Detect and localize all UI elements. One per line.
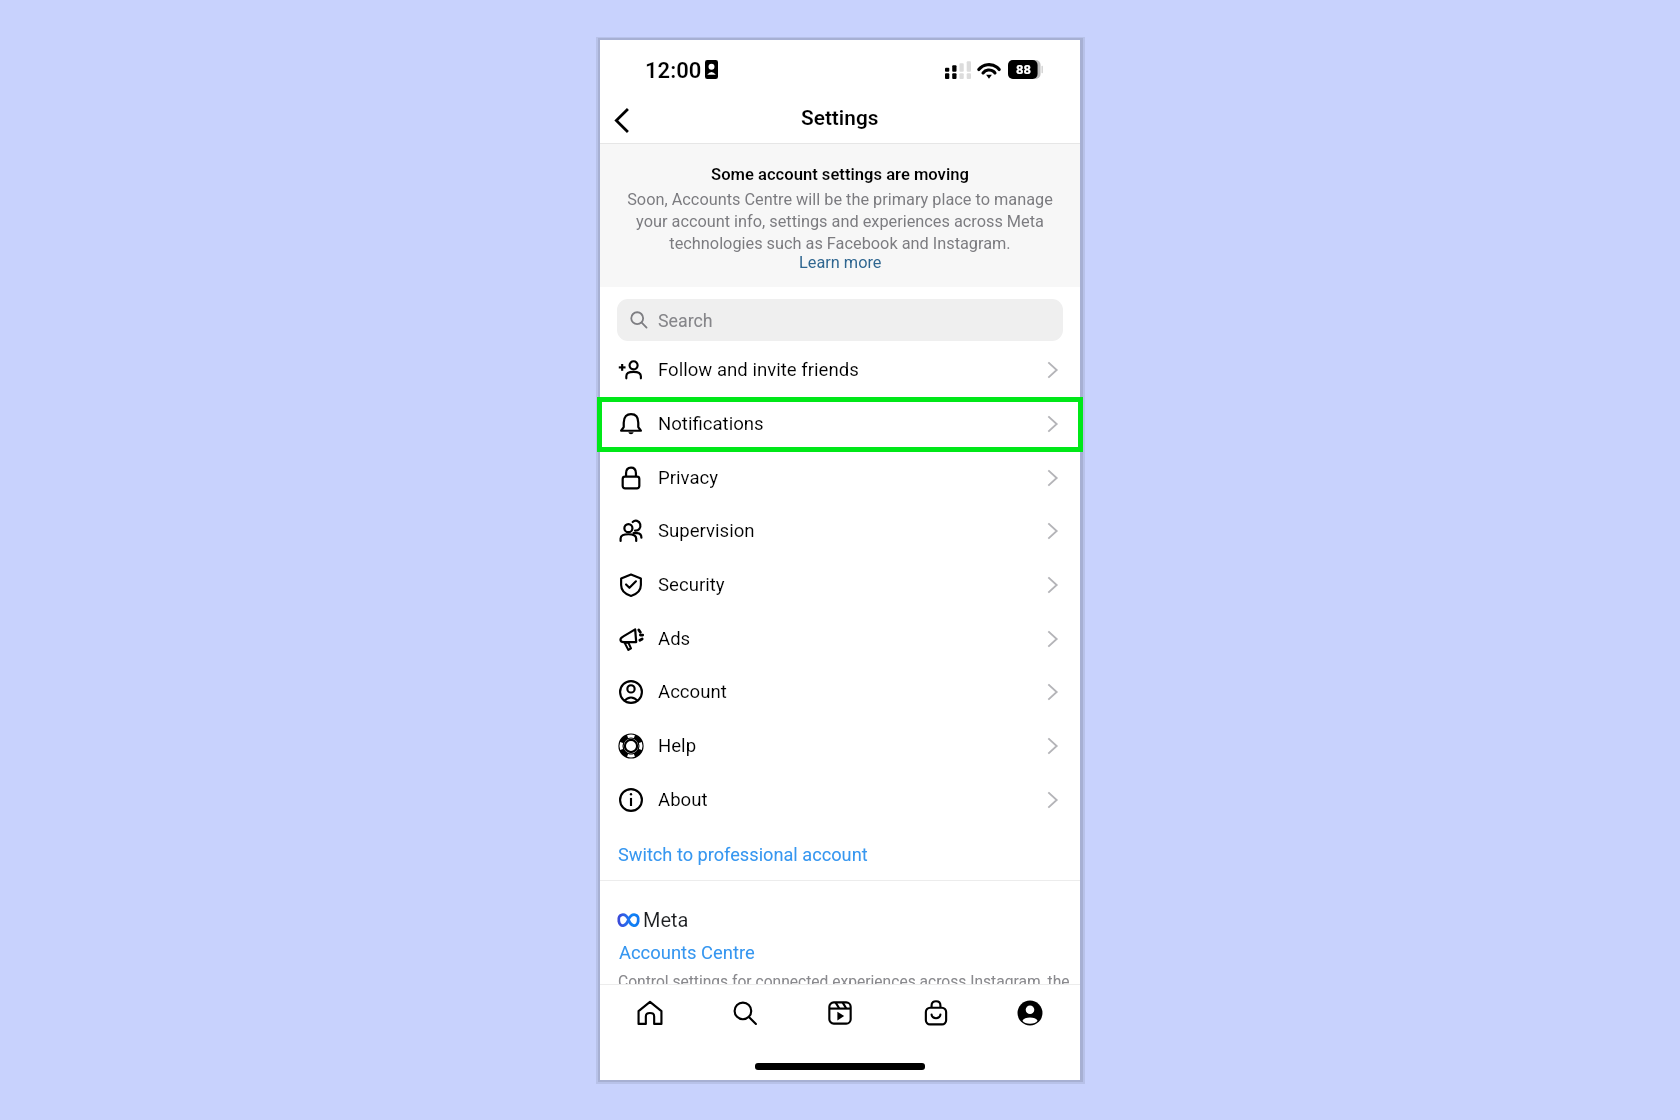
button[interactable]: About [600, 773, 1080, 827]
button[interactable]: Reels [809, 985, 871, 1041]
staticText: Follow and invite friends [658, 359, 859, 381]
staticText: Privacy [658, 467, 719, 489]
button[interactable]: Search [714, 985, 776, 1041]
staticText: Account [658, 681, 727, 703]
button[interactable]: Learn more [795, 253, 886, 272]
button[interactable]: Follow and invite friends [600, 343, 1080, 397]
staticText: Ads [658, 628, 691, 650]
staticText: Supervision [658, 520, 755, 542]
button[interactable]: Back [595, 94, 647, 146]
button[interactable]: Account [600, 665, 1080, 719]
button[interactable]: Notifications [600, 397, 1080, 451]
button[interactable]: Privacy [600, 451, 1080, 505]
staticText: About [658, 789, 708, 811]
staticText: Meta [643, 908, 689, 931]
staticText: Settings [801, 106, 879, 130]
button[interactable]: Ads [600, 612, 1080, 666]
staticText: Soon, Accounts Centre will be the primar… [612, 190, 1068, 253]
button[interactable]: Shop [905, 985, 967, 1041]
button[interactable]: Supervision [600, 504, 1080, 558]
staticText: Learn more [799, 253, 882, 272]
staticText: Security [658, 574, 725, 596]
staticText: 88 [1016, 62, 1031, 77]
staticText: Notifications [658, 413, 764, 435]
button[interactable]: Switch to professional account [600, 831, 1080, 877]
staticText: Some account settings are moving [711, 165, 969, 184]
staticText: Control settings for connected experienc… [618, 973, 1070, 991]
button[interactable]: Profile [999, 985, 1061, 1041]
button[interactable]: Search [617, 299, 1063, 341]
button[interactable]: Security [600, 558, 1080, 612]
staticText: Search [658, 310, 713, 331]
staticText: Accounts Centre [619, 942, 755, 964]
button[interactable]: Home [619, 985, 681, 1041]
staticText: 12:00 [645, 58, 702, 84]
staticText: Switch to professional account [618, 844, 868, 865]
staticText: Help [658, 735, 697, 757]
button[interactable]: Help [600, 719, 1080, 773]
button[interactable]: Accounts Centre [619, 940, 755, 966]
